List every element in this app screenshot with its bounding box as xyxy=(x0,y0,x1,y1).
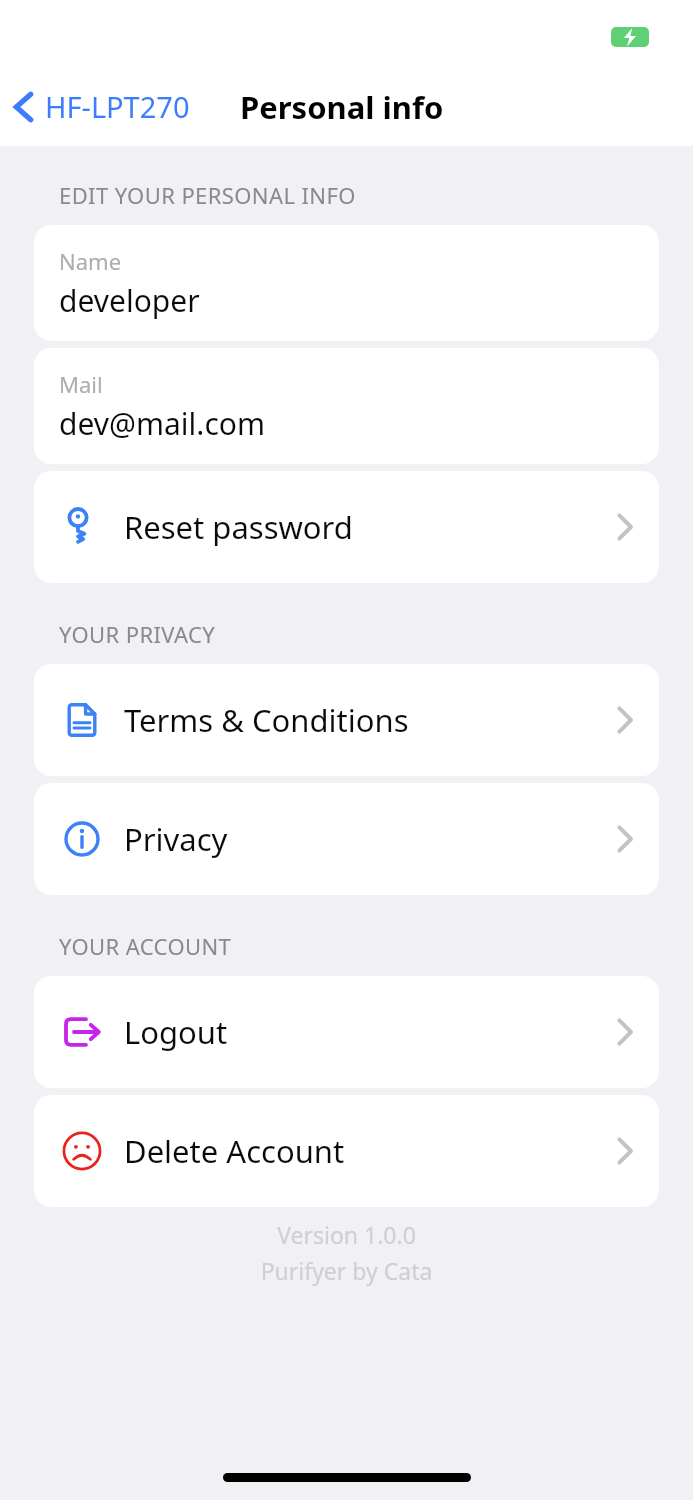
staticText: dev@mail.com xyxy=(59,403,265,444)
staticText: YOUR ACCOUNT xyxy=(59,931,232,961)
staticText: Logout xyxy=(124,1011,615,1053)
staticText: Privacy xyxy=(124,818,615,860)
staticText: developer xyxy=(59,280,200,321)
button[interactable]: Reset password xyxy=(34,471,659,583)
staticText: EDIT YOUR PERSONAL INFO xyxy=(59,180,356,210)
button[interactable]: Name xyxy=(34,225,659,341)
staticText: HF-LPT270 xyxy=(45,87,190,126)
staticText: Delete Account xyxy=(124,1130,615,1172)
staticText: Terms & Conditions xyxy=(124,699,615,741)
staticText: Name xyxy=(59,246,122,276)
staticText: YOUR PRIVACY xyxy=(59,619,216,649)
button[interactable]: Logout xyxy=(34,976,659,1088)
staticText: Mail xyxy=(59,369,103,399)
staticText: Reset password xyxy=(124,506,615,548)
button[interactable]: Privacy xyxy=(34,783,659,895)
staticText: Personal info xyxy=(240,86,444,128)
button[interactable]: HF-LPT270 xyxy=(0,81,196,132)
button[interactable]: Terms and Conditions xyxy=(34,664,659,776)
button[interactable]: Mail xyxy=(34,348,659,464)
staticText: Version 1.0.0 xyxy=(0,1219,693,1250)
staticText: Purifyer by Cata xyxy=(0,1255,693,1286)
button[interactable]: Delete Account xyxy=(34,1095,659,1207)
